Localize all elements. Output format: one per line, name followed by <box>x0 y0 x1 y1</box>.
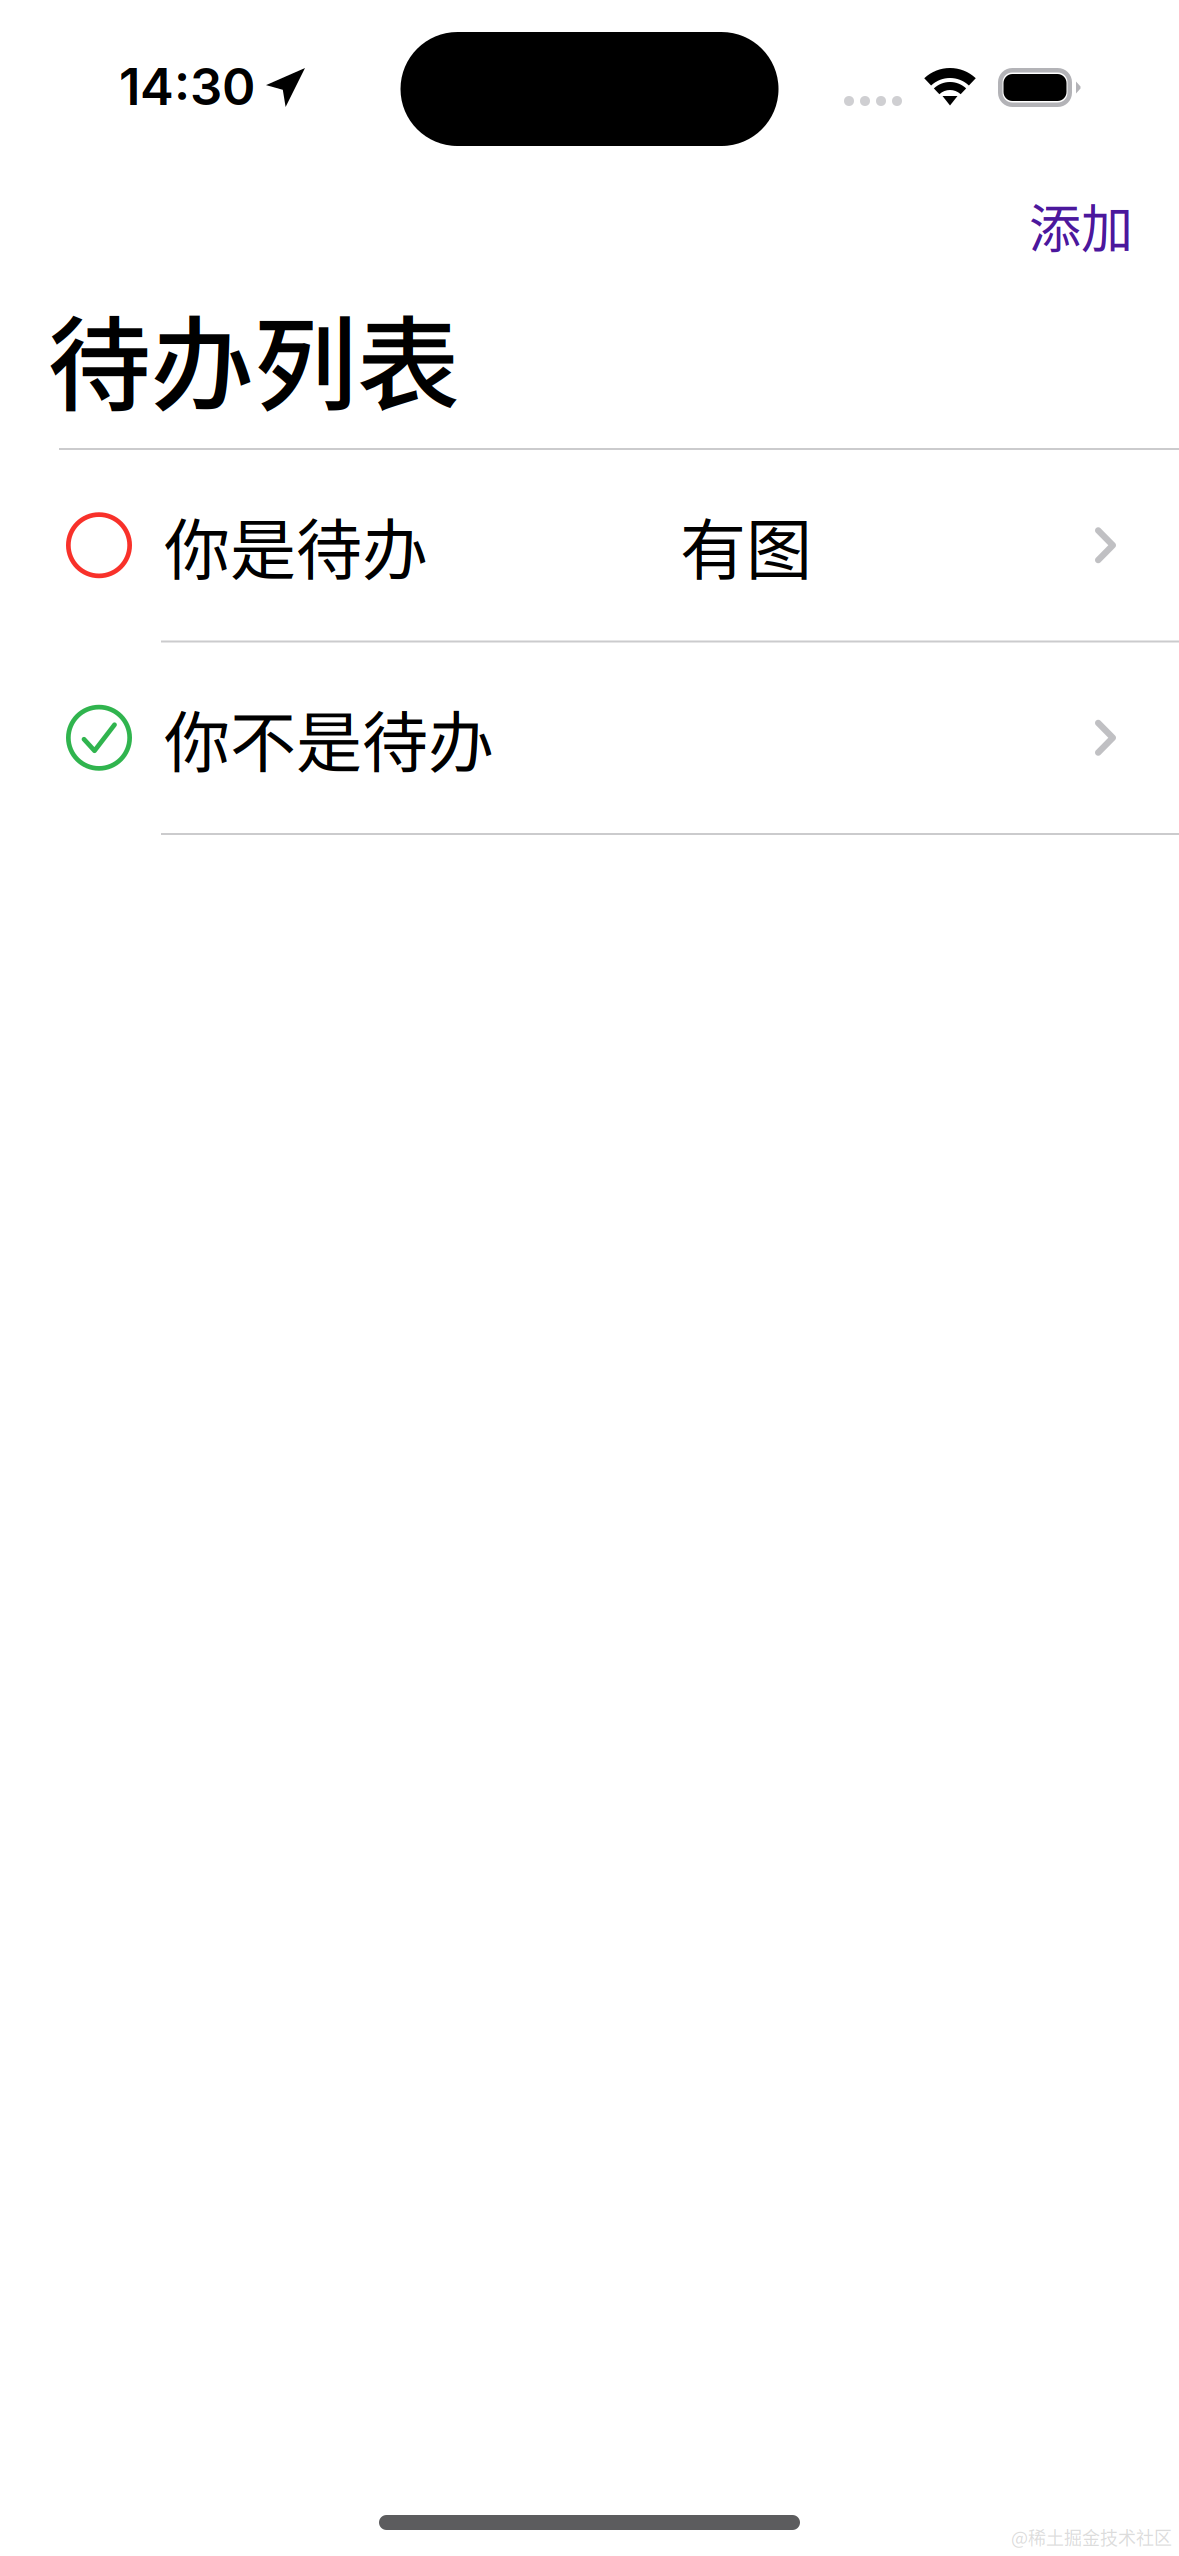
staticText: 添加 <box>1029 187 1133 263</box>
button[interactable]: 你不是待办 <box>0 642 1179 833</box>
staticText: @稀土掘金技术社区 <box>1011 2524 1172 2550</box>
button[interactable]: 你是待办 <box>0 450 1179 640</box>
staticText: 待办列表 <box>48 283 460 432</box>
staticText: 14:30 <box>119 56 255 117</box>
button[interactable]: 添加 <box>978 170 1179 290</box>
staticText: 有图 <box>680 497 812 593</box>
staticText: 你是待办 <box>164 497 428 593</box>
staticText: 你不是待办 <box>164 690 494 786</box>
